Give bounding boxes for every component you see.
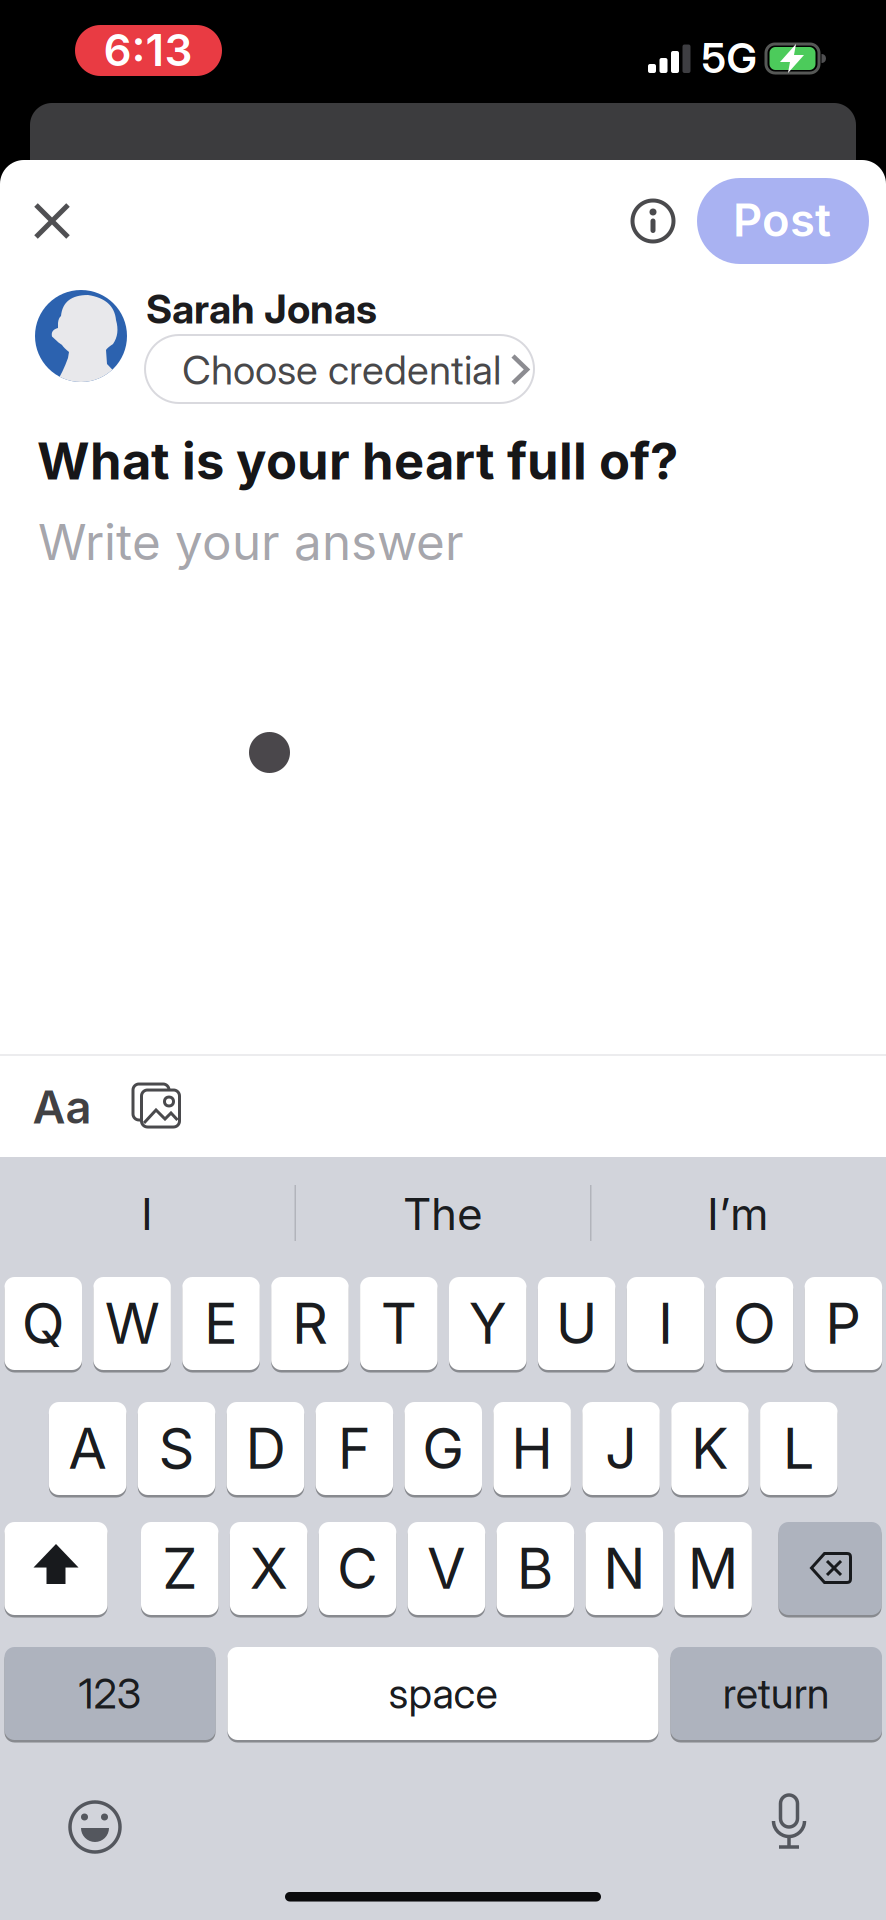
- staticText: E: [204, 1290, 238, 1357]
- staticText: K: [691, 1415, 729, 1482]
- staticText: What is your heart full of?: [37, 431, 678, 491]
- staticText: N: [603, 1535, 645, 1602]
- staticText: 5G: [701, 34, 756, 82]
- staticText: B: [517, 1535, 554, 1602]
- staticText: P: [825, 1290, 861, 1357]
- staticText: S: [159, 1415, 195, 1482]
- staticText: Sarah Jonas: [146, 285, 377, 333]
- staticText: W: [105, 1290, 160, 1357]
- staticText: I: [141, 1188, 153, 1240]
- staticText: T: [381, 1290, 417, 1357]
- staticText: 123: [78, 1669, 141, 1718]
- staticText: V: [427, 1535, 466, 1602]
- staticText: G: [422, 1415, 464, 1482]
- staticText: L: [783, 1415, 815, 1482]
- staticText: D: [245, 1415, 285, 1482]
- staticText: O: [733, 1290, 776, 1357]
- staticText: X: [250, 1535, 288, 1602]
- staticText: U: [556, 1290, 598, 1357]
- staticText: Aa: [32, 1080, 91, 1134]
- staticText: M: [688, 1535, 739, 1602]
- staticText: Y: [469, 1290, 507, 1357]
- staticText: The: [403, 1188, 483, 1240]
- staticText: Post: [733, 193, 831, 247]
- staticText: C: [337, 1535, 378, 1602]
- staticText: 6:13: [103, 24, 192, 76]
- staticText: R: [292, 1290, 328, 1357]
- staticText: Choose credential: [182, 346, 501, 394]
- staticText: A: [68, 1415, 107, 1482]
- staticText: J: [605, 1415, 637, 1482]
- staticText: Z: [162, 1535, 197, 1602]
- staticText: I: [658, 1290, 673, 1357]
- staticText: I’m: [707, 1188, 769, 1240]
- staticText: Write your answer: [38, 513, 464, 571]
- staticText: H: [511, 1415, 553, 1482]
- staticText: Q: [22, 1290, 65, 1357]
- staticText: return: [723, 1669, 830, 1718]
- staticText: F: [338, 1415, 371, 1482]
- staticText: space: [388, 1669, 497, 1718]
